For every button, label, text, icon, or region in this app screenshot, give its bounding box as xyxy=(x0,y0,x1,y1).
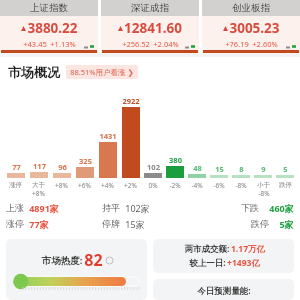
staticText: +2.60% xyxy=(252,39,278,49)
button[interactable]: 市场概况 xyxy=(8,64,300,80)
staticText: 两市成交额: xyxy=(183,243,231,255)
staticText: 下跌 xyxy=(241,202,259,213)
staticText: 325 xyxy=(79,156,92,166)
staticText: 较上一日: xyxy=(188,257,227,269)
staticText: 5家 xyxy=(279,218,294,230)
staticText: 2922 xyxy=(122,96,140,106)
staticText: 上证指数 xyxy=(30,2,68,14)
staticText: +76.19 xyxy=(225,39,249,49)
staticText: +4% xyxy=(101,181,114,190)
staticText: 1.17万亿 xyxy=(231,243,265,255)
staticText: 深证成指 xyxy=(131,2,169,14)
staticText: 88.51%用户看涨 ❯ xyxy=(70,67,134,77)
staticText: 12841.60 xyxy=(124,19,182,37)
staticText: +8% xyxy=(55,181,68,190)
staticText: 77家 xyxy=(29,218,49,230)
button[interactable]: 创业板指 xyxy=(202,0,300,54)
staticText: -2% xyxy=(169,181,181,190)
staticText: +2% xyxy=(124,181,137,190)
staticText: 5 xyxy=(283,164,288,174)
button[interactable]: 深证成指 xyxy=(101,0,199,54)
staticText: +2.04% xyxy=(153,39,179,49)
staticText: 市场概况 xyxy=(8,64,60,80)
staticText: 15家 xyxy=(125,218,145,230)
staticText: 市场热度: xyxy=(40,254,84,267)
staticText: 大于 xyxy=(32,181,45,189)
staticText: +8% xyxy=(32,189,45,198)
staticText: 1431 xyxy=(99,131,117,141)
staticText: 102 xyxy=(147,162,160,172)
staticText: -6% xyxy=(213,181,225,190)
staticText: -8% xyxy=(258,189,270,198)
staticText: +1.13% xyxy=(50,39,76,49)
staticText: -4% xyxy=(191,181,203,190)
staticText: 102家 xyxy=(125,202,150,214)
staticText: +1493亿 xyxy=(227,257,260,269)
staticText: 460家 xyxy=(269,202,294,214)
staticText: 380 xyxy=(169,155,182,165)
staticText: 涨停 xyxy=(6,218,24,229)
button[interactable]: 今日预测量能: xyxy=(153,279,294,300)
staticText: 今日预测量能: xyxy=(197,285,251,297)
staticText: 跌停 xyxy=(279,181,292,189)
staticText: 9 xyxy=(261,164,266,174)
staticText: 0% xyxy=(148,181,158,190)
staticText: 3880.22 xyxy=(27,19,78,37)
staticText: 77 xyxy=(12,162,21,172)
staticText: 117 xyxy=(33,161,46,171)
staticText: +256.52 xyxy=(122,39,150,49)
button[interactable]: 上证指数 xyxy=(0,0,98,54)
staticText: 96 xyxy=(58,162,67,172)
staticText: +6% xyxy=(78,181,91,190)
button[interactable]: 两市成交额: xyxy=(153,239,294,273)
staticText: 3005.23 xyxy=(229,19,280,37)
staticText: 8 xyxy=(239,164,244,174)
other: Info about market heat xyxy=(106,257,113,264)
staticText: 15 xyxy=(215,164,224,174)
staticText: 涨停 xyxy=(9,181,22,189)
staticText: 停牌 xyxy=(102,218,120,229)
staticText: 4891家 xyxy=(29,202,59,214)
staticText: 上涨 xyxy=(6,202,24,213)
button[interactable]: 市场热度: xyxy=(6,239,147,300)
staticText: 持平 xyxy=(102,202,120,213)
staticText: -8% xyxy=(235,181,247,190)
staticText: 小于 xyxy=(257,181,270,189)
staticText: 跌停 xyxy=(251,218,269,229)
staticText: 82 xyxy=(84,249,103,271)
staticText: +43.45 xyxy=(23,39,47,49)
staticText: 创业板指 xyxy=(232,2,270,14)
staticText: 48 xyxy=(193,163,202,173)
